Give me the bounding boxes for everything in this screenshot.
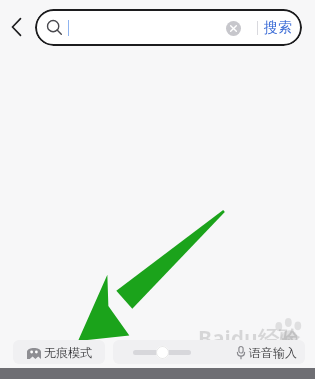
button[interactable]: 返回 — [2, 11, 32, 43]
button[interactable]: 滑块 — [133, 342, 191, 362]
button[interactable]: 清除 — [35, 9, 302, 46]
staticText: Baidu经验 — [198, 324, 300, 353]
staticText: 语音输入 — [249, 345, 297, 360]
button[interactable]: 搜索 — [258, 13, 298, 43]
staticText: 搜索 — [264, 19, 292, 37]
button[interactable]: 清除 — [221, 16, 245, 40]
staticText: jingyan.baidu.com — [198, 345, 268, 356]
button[interactable]: 无痕模式 — [13, 340, 105, 364]
button[interactable]: 语音输入 — [236, 341, 297, 363]
staticText: 无痕模式 — [44, 345, 92, 360]
